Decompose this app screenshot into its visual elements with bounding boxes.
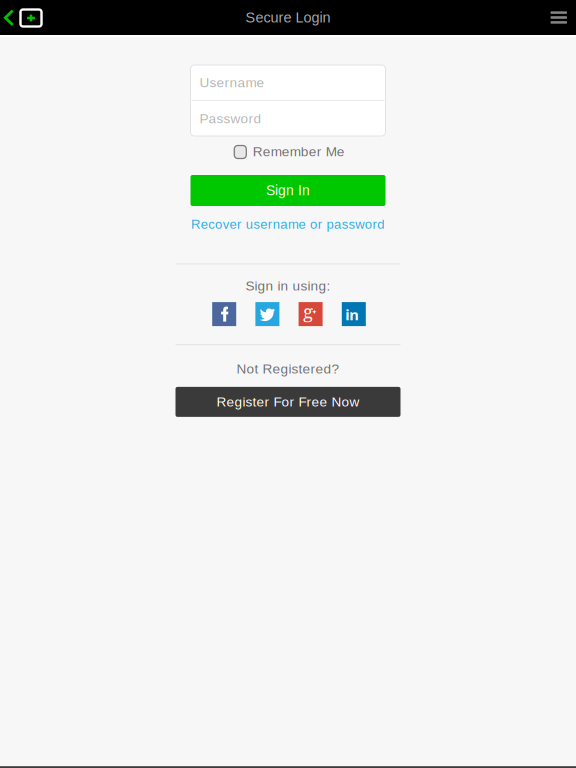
staticText: g bbox=[303, 298, 313, 324]
button[interactable]: Menu bbox=[538, 0, 576, 35]
staticText: Secure Login bbox=[245, 9, 330, 26]
staticText: Register For Free Now bbox=[216, 394, 359, 409]
staticText: Remember Me bbox=[253, 144, 345, 159]
staticText: Recover username or password bbox=[187, 216, 389, 232]
staticText: Sign in using: bbox=[245, 278, 330, 293]
staticText: Username bbox=[199, 75, 264, 90]
button[interactable]: Twitter bbox=[255, 302, 279, 326]
staticText: Not Registered? bbox=[236, 361, 339, 376]
button[interactable]: Recover username or password bbox=[187, 216, 389, 231]
button[interactable]: Google Plus bbox=[299, 302, 323, 326]
staticText: in bbox=[345, 305, 359, 325]
button[interactable]: Facebook bbox=[212, 302, 236, 326]
button[interactable]: Register For Free Now bbox=[175, 387, 400, 417]
button[interactable]: Back bbox=[0, 0, 48, 35]
button[interactable]: Sign In bbox=[190, 175, 385, 206]
staticText: Sign In bbox=[266, 183, 310, 198]
button[interactable]: LinkedIn bbox=[342, 302, 366, 326]
staticText: Password bbox=[199, 111, 261, 126]
button[interactable]: Remember Me bbox=[233, 142, 343, 160]
